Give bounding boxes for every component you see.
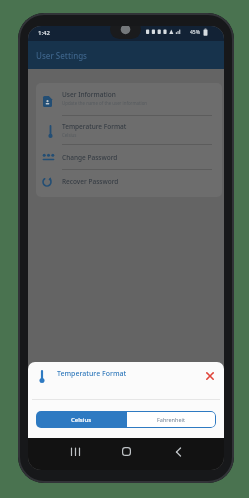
button[interactable]: Temperature Format (36, 116, 222, 144)
button[interactable]: Change Password (36, 144, 222, 169)
staticText: User Information (62, 90, 116, 99)
staticText: Celsius (71, 416, 92, 424)
staticText: Fahrenheit (157, 416, 185, 423)
button[interactable] (206, 372, 214, 380)
button[interactable]: Fahrenheit (126, 411, 216, 428)
staticText: Change Password (62, 153, 118, 162)
button[interactable]: User Settings (28, 41, 224, 69)
staticText: 1:42 (38, 29, 50, 37)
staticText: Update the name of the user information (62, 100, 148, 106)
staticText: 45% (190, 29, 200, 36)
staticText: Temperature Format (57, 369, 127, 379)
button[interactable]: Recover Password (36, 169, 222, 197)
staticText: Temperature Format (62, 122, 127, 131)
button[interactable] (175, 447, 182, 457)
button[interactable]: User Information (36, 83, 222, 116)
button[interactable]: Celsius (36, 411, 126, 428)
button[interactable] (122, 447, 131, 456)
button[interactable] (70, 447, 82, 457)
staticText: Celsius (62, 132, 77, 138)
staticText: User Settings (36, 50, 87, 61)
staticText: Recover Password (62, 177, 119, 186)
